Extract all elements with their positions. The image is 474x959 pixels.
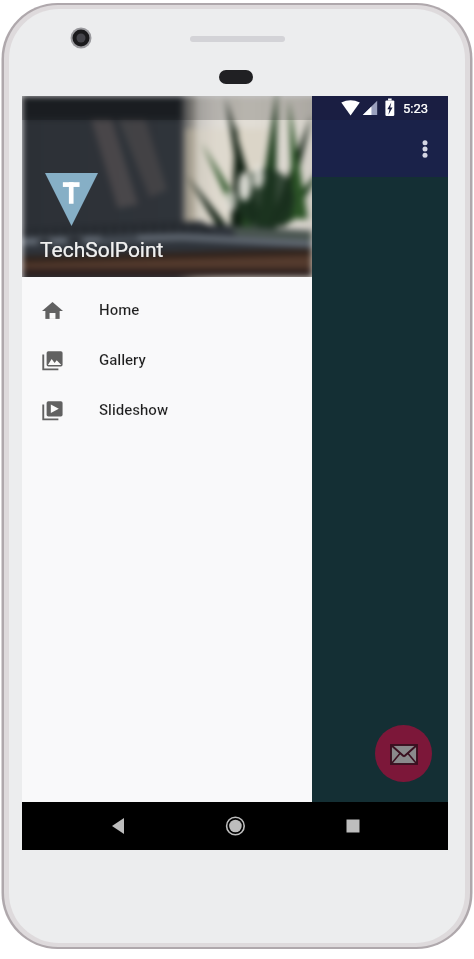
staticText: Gallery — [99, 351, 146, 369]
button[interactable]: Send email — [375, 725, 432, 782]
staticText: Home — [99, 301, 140, 319]
button[interactable]: Slideshow — [22, 385, 312, 435]
button[interactable]: More options — [406, 130, 444, 168]
button[interactable]: Gallery — [22, 335, 312, 385]
staticText: Slideshow — [99, 401, 169, 419]
staticText: TechSolPoint — [40, 238, 164, 263]
staticText: 5:23 — [403, 101, 429, 116]
button[interactable]: Home — [22, 285, 312, 335]
